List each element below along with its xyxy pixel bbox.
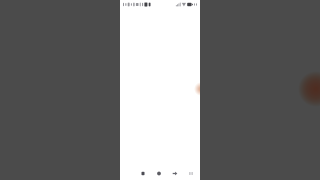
button[interactable]: Recents — [183, 167, 199, 179]
button[interactable]: Forward — [167, 167, 183, 179]
button[interactable]: Home — [151, 167, 167, 179]
button[interactable]: Back — [135, 167, 151, 179]
